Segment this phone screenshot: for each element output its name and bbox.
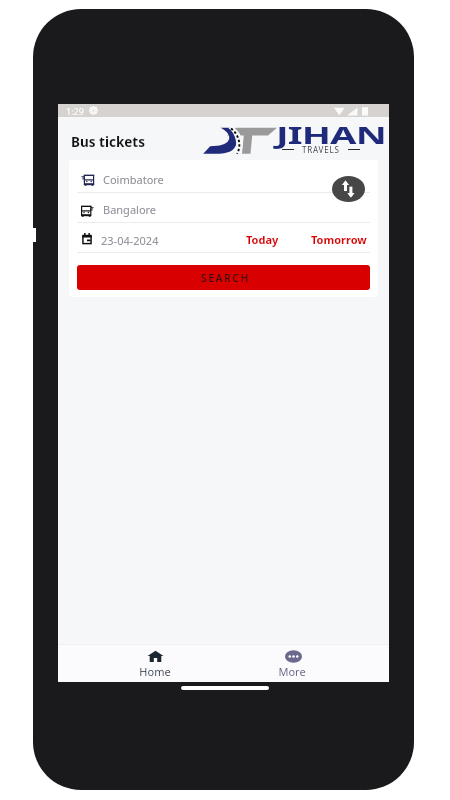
staticText: Home (139, 664, 171, 679)
staticText: 23-04-2024 (101, 233, 159, 248)
button[interactable]: Home (87, 645, 223, 682)
staticText: Bangalore (103, 202, 157, 217)
staticText: TRAVELS (302, 144, 340, 155)
staticText: Coimbatore (103, 172, 164, 187)
button[interactable]: Coimbatore (77, 160, 370, 192)
button[interactable]: Swap source and destination (332, 176, 365, 202)
staticText: Today (246, 232, 279, 247)
button[interactable]: 23-04-2024 (81, 232, 159, 247)
staticText: More (278, 664, 306, 679)
staticText: SEARCH (201, 271, 251, 285)
button[interactable]: Tomorrow (308, 232, 370, 247)
staticText: JIHAN (276, 118, 386, 150)
staticText: 1:29 (66, 105, 84, 117)
button[interactable]: Today (243, 232, 282, 247)
staticText: Tomorrow (311, 232, 367, 247)
button[interactable]: More (223, 645, 360, 682)
button[interactable]: SEARCH (77, 265, 370, 290)
staticText: Bus tickets (71, 131, 146, 151)
button[interactable]: Bangalore (77, 193, 370, 222)
